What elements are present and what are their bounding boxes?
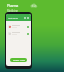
staticText: Pharma xyxy=(7,4,19,8)
button[interactable]: Order Now xyxy=(10,58,27,62)
staticText: MyMeds xyxy=(8,16,18,19)
button[interactable]: MyMeds xyxy=(6,14,31,21)
button[interactable]: Status xyxy=(8,30,29,37)
staticText: Order Now xyxy=(13,59,25,62)
button[interactable]: Status xyxy=(8,23,29,30)
staticText: Medicine xyxy=(7,9,19,13)
